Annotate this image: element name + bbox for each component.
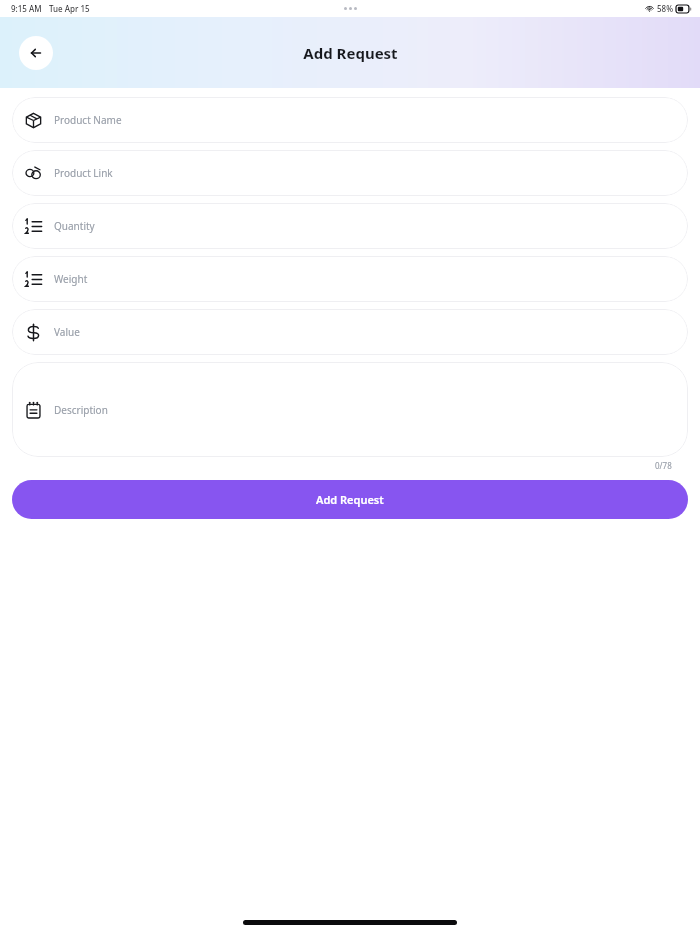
staticText: Value [54, 325, 80, 339]
staticText: Weight [54, 272, 88, 286]
button[interactable]: Value [12, 309, 688, 355]
staticText: 0/78 [655, 460, 672, 471]
staticText: Description [54, 403, 108, 417]
button[interactable]: Quantity [12, 203, 688, 249]
button[interactable]: Weight [12, 256, 688, 302]
button[interactable]: Back [19, 36, 53, 70]
button[interactable]: Add Request [12, 480, 688, 519]
staticText: Add Request [303, 43, 398, 63]
staticText: Product Link [54, 166, 113, 180]
staticText: 58% [657, 3, 673, 14]
button[interactable]: Description [12, 362, 688, 457]
staticText: Product Name [54, 113, 122, 127]
staticText: Tue Apr 15 [49, 3, 90, 14]
button[interactable]: Product Link [12, 150, 688, 196]
staticText: Add Request [316, 492, 384, 507]
button[interactable]: Product Name [12, 97, 688, 143]
staticText: 9:15 AM [11, 3, 42, 14]
staticText: Quantity [54, 219, 95, 233]
